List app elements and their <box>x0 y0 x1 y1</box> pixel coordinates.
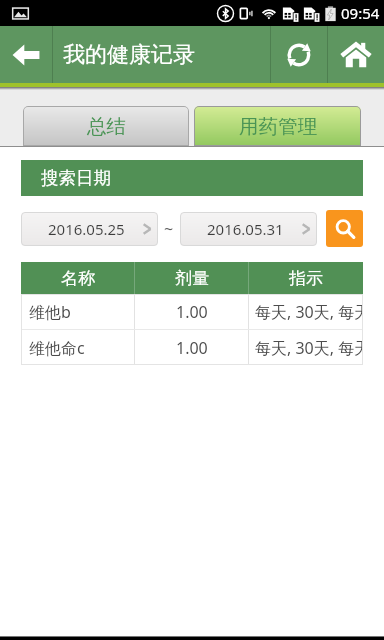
staticText: 用药管理 <box>239 114 317 139</box>
button[interactable]: Back <box>0 26 52 83</box>
staticText: ~ <box>164 218 174 240</box>
staticText: 搜索日期 <box>41 167 111 189</box>
staticText: 2016.05.25 <box>48 219 125 239</box>
staticText: 每天, 30天, 每天 <box>255 301 363 323</box>
staticText: 2016.05.31 <box>207 219 284 239</box>
staticText: 1.00 <box>176 337 208 359</box>
button[interactable]: 维他b <box>21 294 363 329</box>
button[interactable]: 总结 <box>23 106 189 146</box>
staticText: 维他b <box>29 301 71 323</box>
staticText: 每天, 30天, 每天 <box>255 337 363 359</box>
button[interactable]: Home <box>328 26 384 83</box>
staticText: 1.00 <box>176 301 208 323</box>
staticText: 名称 <box>61 268 95 289</box>
button[interactable]: 2016.05.25 <box>21 212 158 246</box>
staticText: 维他命c <box>29 337 85 359</box>
staticText: 剂量 <box>175 268 209 289</box>
staticText: 指示 <box>289 268 323 289</box>
staticText: 09:54 <box>341 3 380 23</box>
button[interactable]: Refresh <box>271 26 327 83</box>
staticText: 总结 <box>87 114 126 139</box>
button[interactable]: Search <box>326 210 363 247</box>
button[interactable]: 2016.05.31 <box>180 212 317 246</box>
button[interactable]: 维他命c <box>21 330 363 365</box>
button[interactable]: 用药管理 <box>194 106 361 146</box>
staticText: 我的健康记录 <box>63 41 270 69</box>
